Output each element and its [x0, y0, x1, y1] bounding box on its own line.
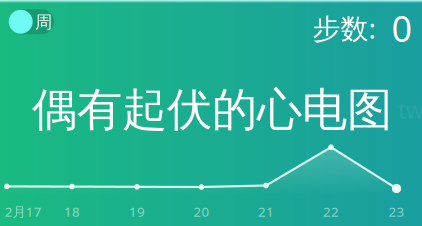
staticText: 0 [391, 4, 412, 52]
staticText: 偶有起伏的心电图 [32, 82, 392, 138]
staticText: tw [398, 95, 422, 125]
button[interactable]: 周 [9, 9, 54, 34]
staticText: 19 [129, 203, 145, 220]
staticText: 21 [258, 203, 274, 220]
staticText: 周 [35, 12, 52, 33]
staticText: 22 [323, 203, 339, 220]
staticText: 23 [388, 203, 404, 220]
staticText: 2月17 [5, 203, 42, 220]
staticText: 18 [64, 203, 80, 220]
staticText: 20 [193, 203, 209, 220]
staticText: 步数: [312, 9, 376, 47]
